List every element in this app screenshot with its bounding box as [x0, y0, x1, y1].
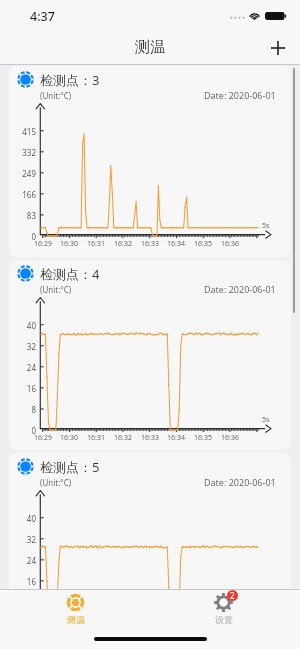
staticText: 332 [12, 147, 36, 158]
staticText: 166 [12, 189, 36, 200]
staticText: (Unit:°C) [40, 90, 72, 101]
staticText: 16:32 [111, 239, 135, 249]
staticText: 16:33 [138, 433, 162, 443]
staticText: 0 [12, 231, 36, 242]
staticText: 16:34 [164, 239, 188, 249]
staticText: 测温 [67, 614, 85, 625]
staticText: Date: 2020-06-01 [204, 283, 276, 295]
staticText: 检测点：4 [40, 265, 100, 283]
staticText: 83 [12, 210, 36, 221]
button[interactable]: Add [262, 32, 294, 64]
staticText: 415 [12, 126, 36, 137]
staticText: 32 [12, 341, 36, 352]
staticText: 测温 [135, 38, 165, 57]
staticText: 16:36 [218, 433, 242, 443]
staticText: 设置 [215, 614, 233, 625]
staticText: 24 [12, 555, 36, 566]
staticText: 16:34 [164, 433, 188, 443]
staticText: 16:29 [31, 239, 55, 249]
button[interactable]: 检测点：5 [9, 453, 291, 644]
staticText: 0 [12, 425, 36, 436]
staticText: 32 [12, 534, 36, 545]
staticText: 16:31 [84, 433, 108, 443]
staticText: 16:35 [191, 239, 215, 249]
staticText: 检测点：3 [40, 71, 100, 89]
staticText: 24 [12, 362, 36, 373]
staticText: 249 [12, 168, 36, 179]
staticText: 2 [230, 590, 235, 601]
staticText: 16:30 [57, 239, 81, 249]
button[interactable]: 检测点：4 [9, 260, 291, 450]
staticText: 8 [12, 404, 36, 415]
button[interactable]: 2 [192, 591, 254, 631]
staticText: 16:29 [31, 433, 55, 443]
staticText: (Unit:°C) [40, 477, 72, 488]
staticText: 检测点：5 [40, 458, 100, 476]
staticText: 16:35 [191, 433, 215, 443]
staticText: 40 [12, 513, 36, 524]
staticText: (Unit:°C) [40, 284, 72, 295]
staticText: 5s [262, 415, 270, 425]
staticText: 16 [12, 576, 36, 587]
staticText: 16:30 [57, 433, 81, 443]
staticText: 16:33 [138, 239, 162, 249]
staticText: 40 [12, 320, 36, 331]
staticText: Date: 2020-06-01 [204, 476, 276, 488]
staticText: 4:37 [30, 8, 55, 25]
staticText: 16:36 [218, 239, 242, 249]
staticText: Date: 2020-06-01 [204, 89, 276, 101]
staticText: 16 [12, 383, 36, 394]
button[interactable]: 测温 [44, 591, 106, 631]
button[interactable]: 检测点：3 [9, 66, 291, 257]
staticText: 16:31 [84, 239, 108, 249]
staticText: 16:32 [111, 433, 135, 443]
staticText: 5s [262, 221, 270, 231]
